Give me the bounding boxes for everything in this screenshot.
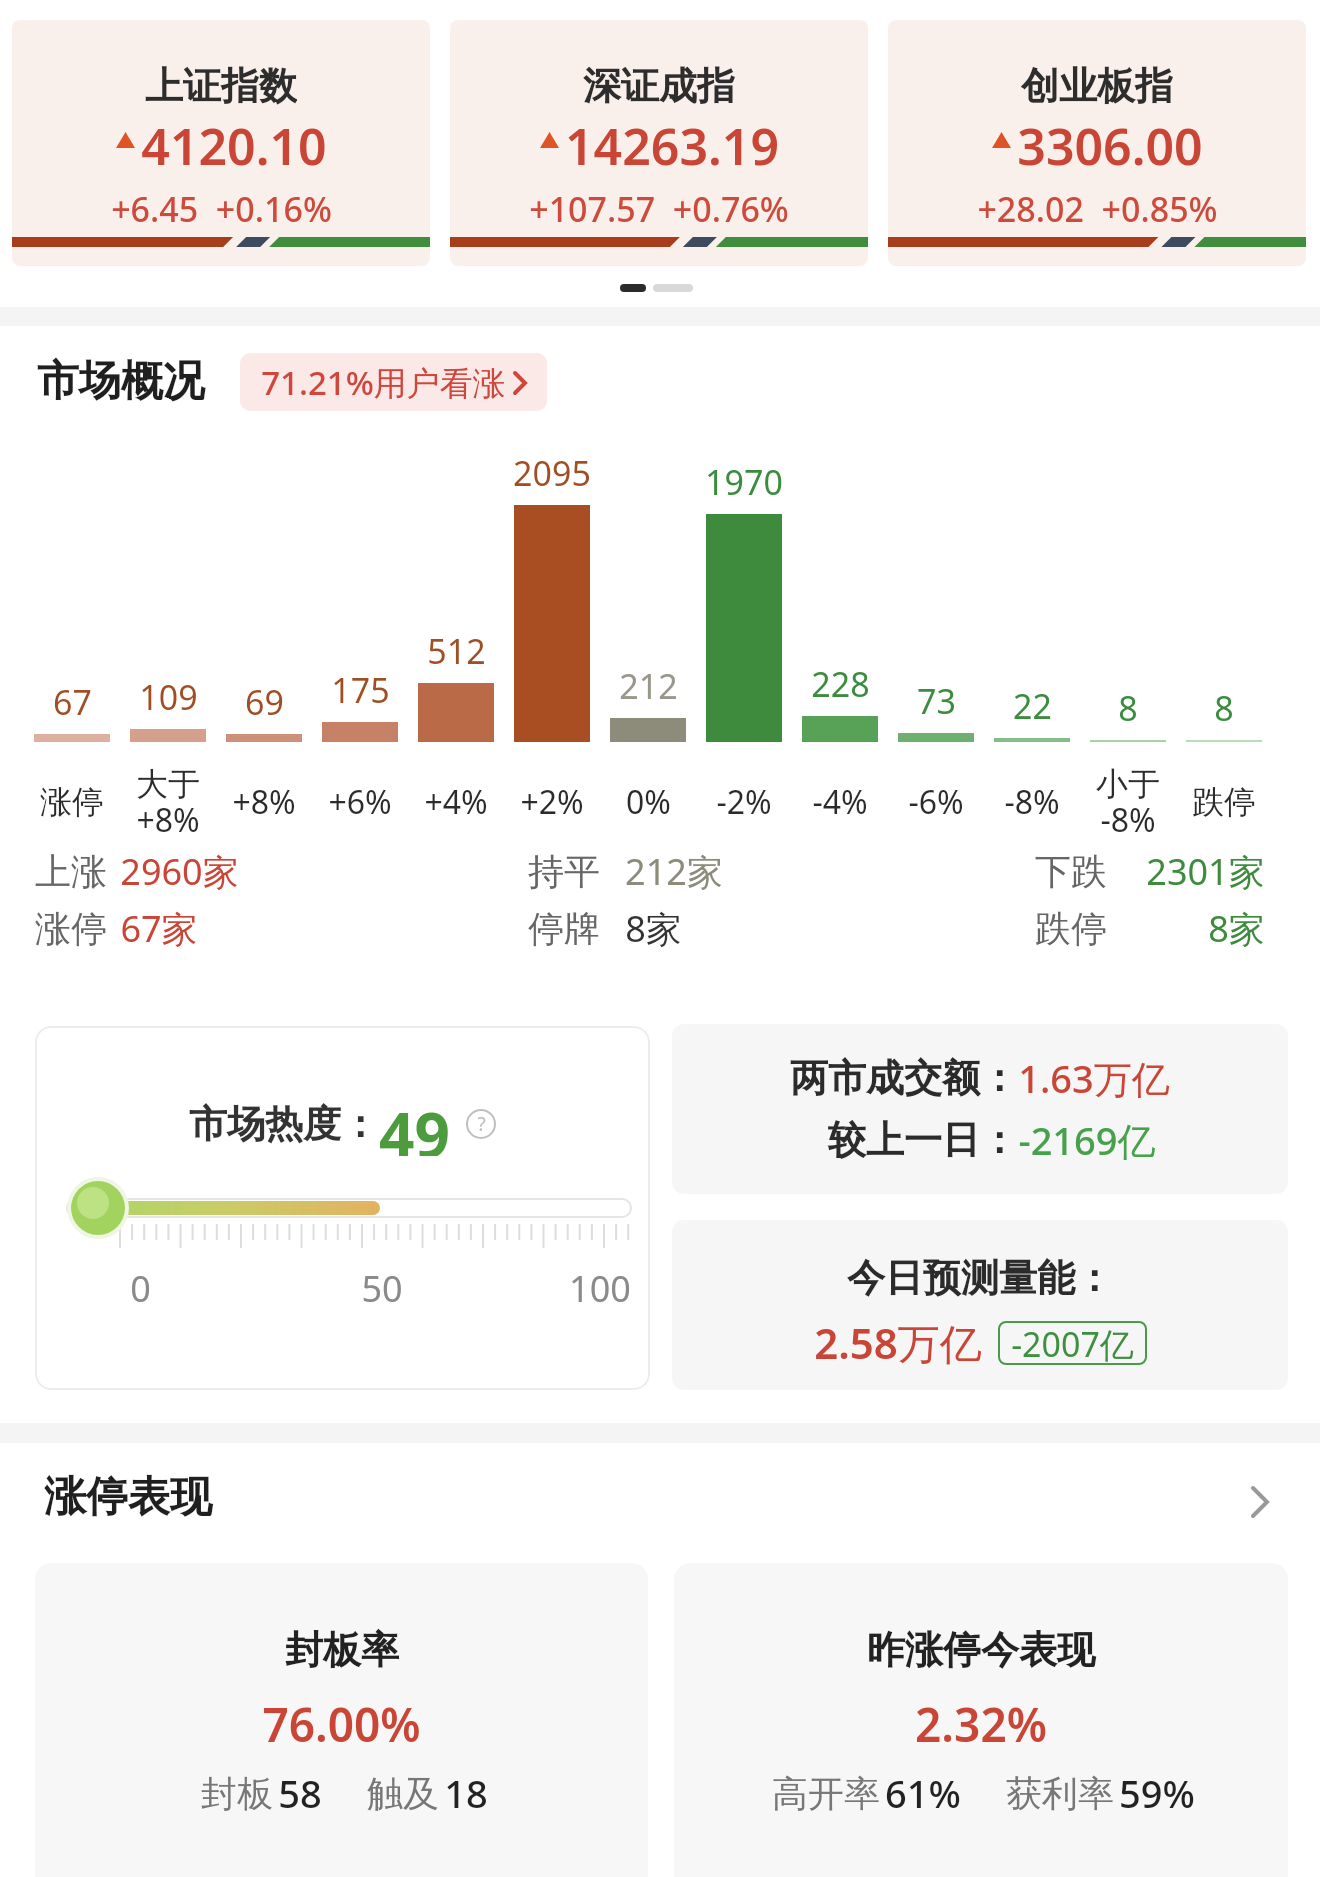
staticText: 上涨 <box>35 849 107 894</box>
staticText: 58 <box>278 1767 322 1817</box>
staticText: 封板 <box>196 1768 278 1817</box>
staticText: 22 <box>1013 683 1052 729</box>
staticText: 涨停 <box>35 906 107 951</box>
staticText: 上证指数 <box>145 62 297 108</box>
staticText: 109 <box>139 674 198 720</box>
staticText: -2% <box>716 780 772 824</box>
staticText: 1.63万亿 <box>1018 1052 1170 1104</box>
staticText: 跌停 <box>1192 782 1256 822</box>
button[interactable]: 深证成指 <box>450 20 868 266</box>
button[interactable]: 创业板指 <box>888 20 1306 266</box>
staticText: 212家 <box>625 847 723 895</box>
staticText: 8家 <box>1208 904 1265 952</box>
staticText: +2% <box>520 780 584 824</box>
staticText: 2960家 <box>120 847 239 895</box>
staticText: 下跌 <box>1035 849 1107 894</box>
staticText: 175 <box>331 667 390 713</box>
staticText: 创业板指 <box>1021 62 1173 108</box>
staticText: 49 <box>379 1092 450 1156</box>
staticText: 较上一日： <box>828 1116 1018 1164</box>
button[interactable]: 今日预测量能： <box>672 1220 1288 1390</box>
staticText: 封板率 <box>285 1626 399 1674</box>
staticText: 高开率 <box>767 1768 885 1817</box>
staticText: 61% <box>885 1767 961 1817</box>
staticText: 4120.10 <box>141 112 327 168</box>
staticText: 100 <box>569 1264 631 1312</box>
staticText: 昨涨停今表现 <box>867 1626 1095 1674</box>
staticText: 212 <box>619 663 678 709</box>
staticText: 今日预测量能： <box>847 1254 1113 1302</box>
staticText: 67家 <box>120 904 198 952</box>
staticText: 小于 -8% <box>1096 764 1160 840</box>
staticText: 涨停 <box>40 782 104 822</box>
staticText: 8 <box>1214 685 1234 731</box>
staticText: 2.58万亿 <box>814 1314 982 1371</box>
staticText: 2095 <box>513 450 591 496</box>
staticText: 0% <box>626 780 671 824</box>
staticText: 14263.19 <box>565 112 779 168</box>
staticText: 持平 <box>528 849 600 894</box>
staticText: +6.45 +0.16% <box>111 186 332 230</box>
staticText: 市场概况 <box>37 355 205 408</box>
staticText: 1970 <box>705 459 783 505</box>
staticText: 59% <box>1119 1767 1195 1817</box>
staticText: +107.57 +0.76% <box>529 186 789 230</box>
staticText: 大于 +8% <box>136 764 200 840</box>
staticText: +8% <box>232 780 296 824</box>
staticText: 2301家 <box>1146 847 1265 895</box>
staticText: -2169亿 <box>1018 1114 1156 1166</box>
staticText: 3306.00 <box>1017 112 1203 168</box>
staticText: 8家 <box>625 904 682 952</box>
staticText: 两市成交额： <box>790 1054 1018 1102</box>
staticText: 触及 <box>362 1768 444 1817</box>
staticText: 0 <box>130 1264 151 1312</box>
staticText: 73 <box>917 678 956 724</box>
button[interactable]: 市场热度： <box>35 1026 650 1390</box>
staticText: 市场热度： <box>189 1100 379 1148</box>
button[interactable]: 上证指数 <box>12 20 430 266</box>
staticText: +6% <box>328 780 392 824</box>
staticText: -6% <box>908 780 964 824</box>
staticText: 76.00% <box>262 1693 421 1751</box>
button[interactable] <box>1240 1482 1280 1522</box>
button[interactable]: 两市成交额： <box>672 1024 1288 1194</box>
staticText: 69 <box>245 679 284 725</box>
staticText: 71.21%用户看涨 <box>261 360 506 405</box>
staticText: 深证成指 <box>583 62 735 108</box>
staticText: 涨停表现 <box>44 1471 212 1524</box>
staticText: -8% <box>1004 780 1060 824</box>
staticText: 跌停 <box>1035 906 1107 951</box>
staticText: 67 <box>53 679 92 725</box>
staticText: 18 <box>444 1767 488 1817</box>
button[interactable]: 71.21%用户看涨 <box>240 353 547 411</box>
staticText: -4% <box>812 780 868 824</box>
staticText: +28.02 +0.85% <box>977 186 1218 230</box>
button[interactable]: 昨涨停今表现 <box>674 1563 1288 1877</box>
staticText: 获利率 <box>1001 1768 1119 1817</box>
staticText: -2007亿 <box>1011 1321 1134 1365</box>
staticText: 停牌 <box>528 906 600 951</box>
staticText: 228 <box>811 661 870 707</box>
staticText: ? <box>477 1111 486 1137</box>
staticText: 8 <box>1118 685 1138 731</box>
staticText: 512 <box>427 628 486 674</box>
staticText: +4% <box>424 780 488 824</box>
staticText: 2.32% <box>915 1693 1047 1751</box>
button[interactable]: 封板率 <box>35 1563 648 1877</box>
staticText: 50 <box>361 1264 403 1312</box>
